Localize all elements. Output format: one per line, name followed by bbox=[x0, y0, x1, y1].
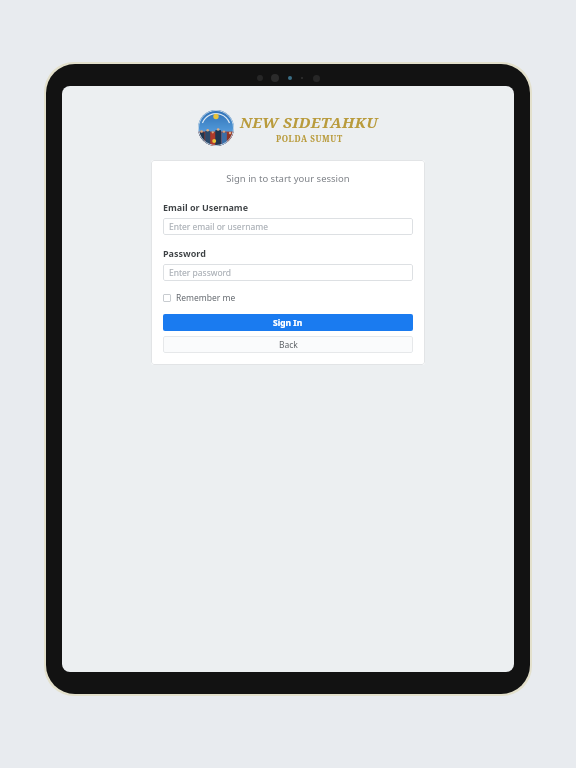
button[interactable]: Back bbox=[163, 336, 413, 353]
staticText: Email or Username bbox=[163, 201, 249, 213]
button[interactable]: Sign In bbox=[163, 314, 413, 331]
staticText: Password bbox=[163, 247, 206, 259]
staticText: Sign In bbox=[273, 317, 303, 329]
button[interactable]: Enter password bbox=[163, 264, 413, 281]
button[interactable]: Remember me bbox=[163, 291, 236, 305]
staticText: POLDA SUMUT bbox=[276, 133, 343, 144]
staticText: Remember me bbox=[176, 292, 236, 304]
staticText: Sign in to start your session bbox=[163, 172, 413, 185]
button[interactable]: Enter email or username bbox=[163, 218, 413, 235]
staticText: Enter password bbox=[169, 267, 232, 279]
staticText: Back bbox=[279, 339, 298, 351]
other: App logo bbox=[198, 110, 234, 146]
staticText: NEW SIDETAHKU bbox=[240, 112, 379, 132]
staticText: Enter email or username bbox=[169, 221, 268, 233]
